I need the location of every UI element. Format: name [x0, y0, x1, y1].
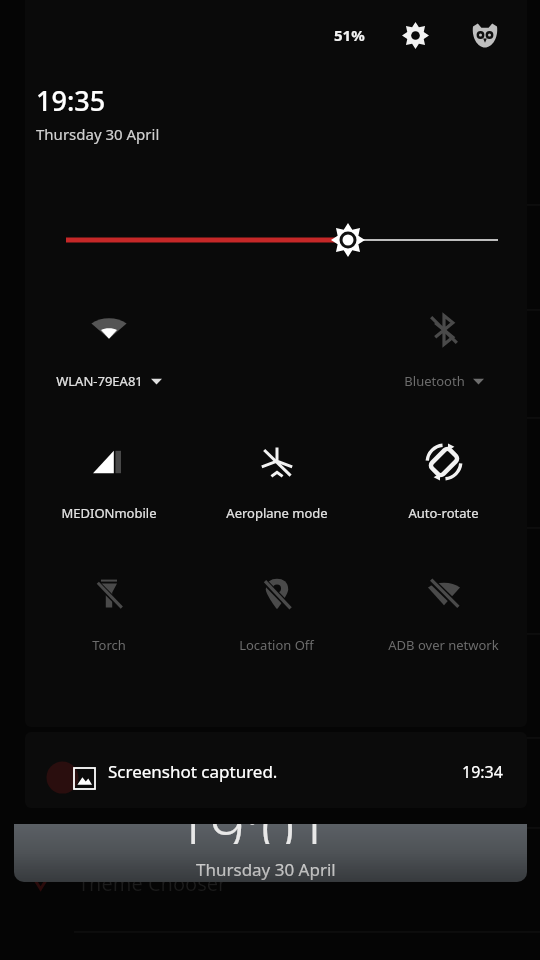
staticText: Thursday 30 April [196, 858, 336, 881]
staticText: Theme Chooser [78, 870, 227, 897]
button[interactable]: WLAN-79EA81 [25, 288, 193, 420]
staticText: 19:35 [36, 82, 106, 119]
staticText: Wi-Fi [78, 143, 124, 170]
staticText: Thursday 30 April [36, 124, 160, 144]
staticText: WLAN-79EA81 [56, 372, 143, 390]
button[interactable]: Bluetooth [360, 288, 527, 420]
staticText: 19:01 [174, 824, 331, 844]
button[interactable]: Aeroplane mode [193, 420, 360, 552]
button[interactable]: MEDIONmobile [25, 420, 193, 552]
staticText: Bluetooth [404, 372, 465, 390]
button[interactable]: User profile [465, 15, 505, 55]
staticText: Auto-rotate [408, 504, 479, 522]
staticText: Data usage [78, 462, 185, 489]
staticText: Settings [24, 65, 123, 100]
staticText: Aeroplane mode [226, 504, 328, 522]
button[interactable]: Brightness [25, 210, 527, 270]
staticText: More [78, 569, 128, 596]
staticText: Configurations [78, 761, 218, 788]
button[interactable]: Settings [395, 15, 435, 55]
button[interactable]: Screenshot preview [14, 824, 527, 882]
staticText: MEDIONmobile [61, 504, 157, 522]
staticText: 19:34 [462, 761, 503, 783]
staticText: Mobile networks [78, 353, 235, 380]
staticText: ADB over network [388, 636, 499, 654]
button[interactable]: Auto-rotate [360, 420, 527, 552]
button[interactable]: Location Off [193, 552, 360, 684]
button[interactable]: ADB over network [360, 552, 527, 684]
staticText: Location Off [239, 636, 314, 654]
staticText: 51% [334, 25, 365, 45]
button[interactable]: Torch [25, 552, 193, 684]
button[interactable]: Screenshot captured. [25, 732, 527, 808]
staticText: Torch [92, 636, 126, 654]
staticText: Screenshot captured. [108, 760, 278, 783]
